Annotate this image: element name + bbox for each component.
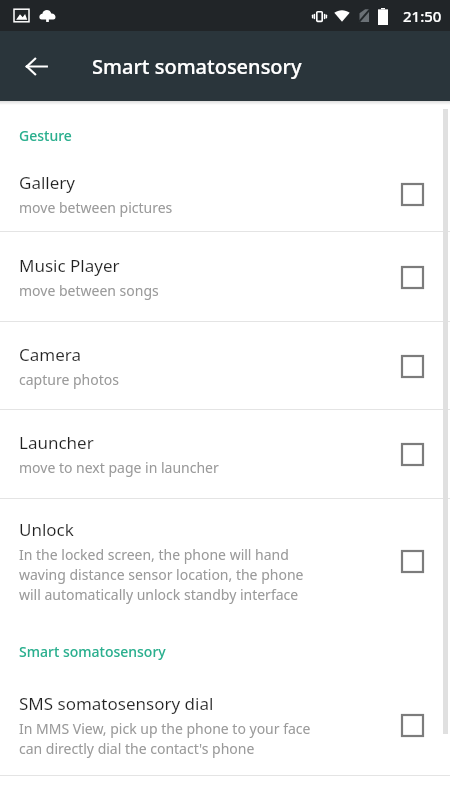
button[interactable]: Music Player	[0, 232, 450, 321]
staticText: move to next page in launcher	[19, 458, 384, 477]
staticText: move between pictures	[19, 198, 384, 217]
staticText: move between songs	[19, 281, 384, 300]
staticText: 21:50	[403, 6, 442, 26]
button[interactable]: Toggle	[392, 257, 432, 297]
button[interactable]: Toggle	[392, 541, 432, 581]
staticText: Music Player	[19, 254, 120, 277]
button[interactable]: Launcher	[0, 410, 450, 498]
staticText: Unlock	[19, 518, 74, 541]
button[interactable]: Toggle	[392, 346, 432, 386]
button[interactable]: SMS somatosensory dial	[0, 675, 450, 775]
staticText: Gesture	[19, 126, 72, 145]
button[interactable]: Navigate up	[12, 42, 60, 90]
staticText: capture photos	[19, 370, 384, 389]
staticText: Smart somatosensory	[19, 642, 166, 661]
button[interactable]: Toggle	[392, 434, 432, 474]
staticText: In MMS View, pick up the phone to your f…	[19, 719, 311, 758]
button[interactable]: Gallery	[0, 157, 450, 231]
staticText: Smart somatosensory	[92, 53, 302, 80]
staticText: SMS somatosensory dial	[19, 692, 214, 715]
staticText: Gallery	[19, 171, 75, 194]
button[interactable]: Unlock	[0, 499, 450, 622]
button[interactable]: Toggle	[392, 705, 432, 745]
staticText: Launcher	[19, 431, 94, 454]
button[interactable]: Toggle	[392, 174, 432, 214]
staticText: Camera	[19, 343, 81, 366]
button[interactable]: Camera	[0, 322, 450, 409]
staticText: In the locked screen, the phone will han…	[19, 545, 311, 604]
